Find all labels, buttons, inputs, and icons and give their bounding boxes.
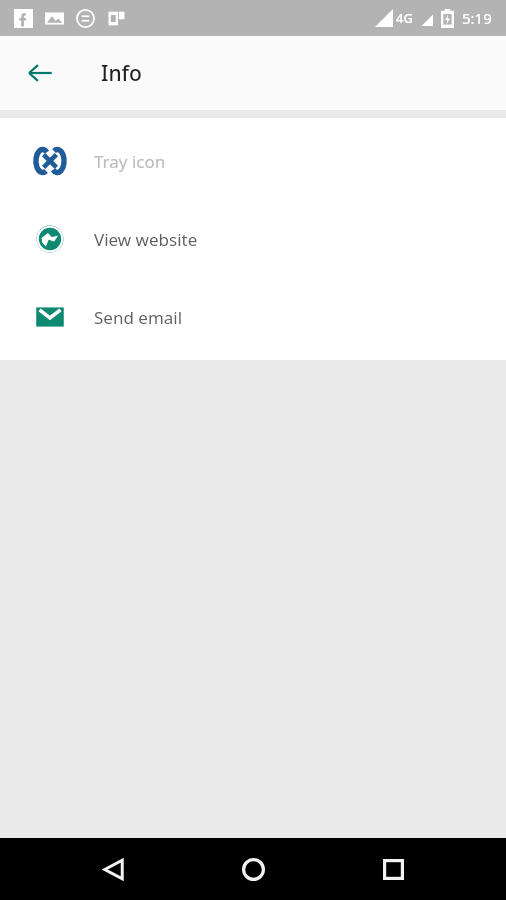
staticText: Tray icon <box>94 150 166 173</box>
button[interactable]: Back <box>16 49 64 97</box>
staticText: Info <box>101 59 142 88</box>
button[interactable]: Recent apps <box>363 839 423 899</box>
button[interactable]: Home <box>223 839 283 899</box>
button[interactable]: Back <box>83 839 143 899</box>
staticText: 5:19 <box>462 8 492 28</box>
staticText: View website <box>94 228 198 251</box>
button[interactable]: View website <box>0 200 506 278</box>
button[interactable]: Send email <box>0 278 506 356</box>
staticText: Send email <box>94 306 183 329</box>
button[interactable]: Tray icon <box>0 122 506 200</box>
staticText: 4G <box>396 9 413 27</box>
